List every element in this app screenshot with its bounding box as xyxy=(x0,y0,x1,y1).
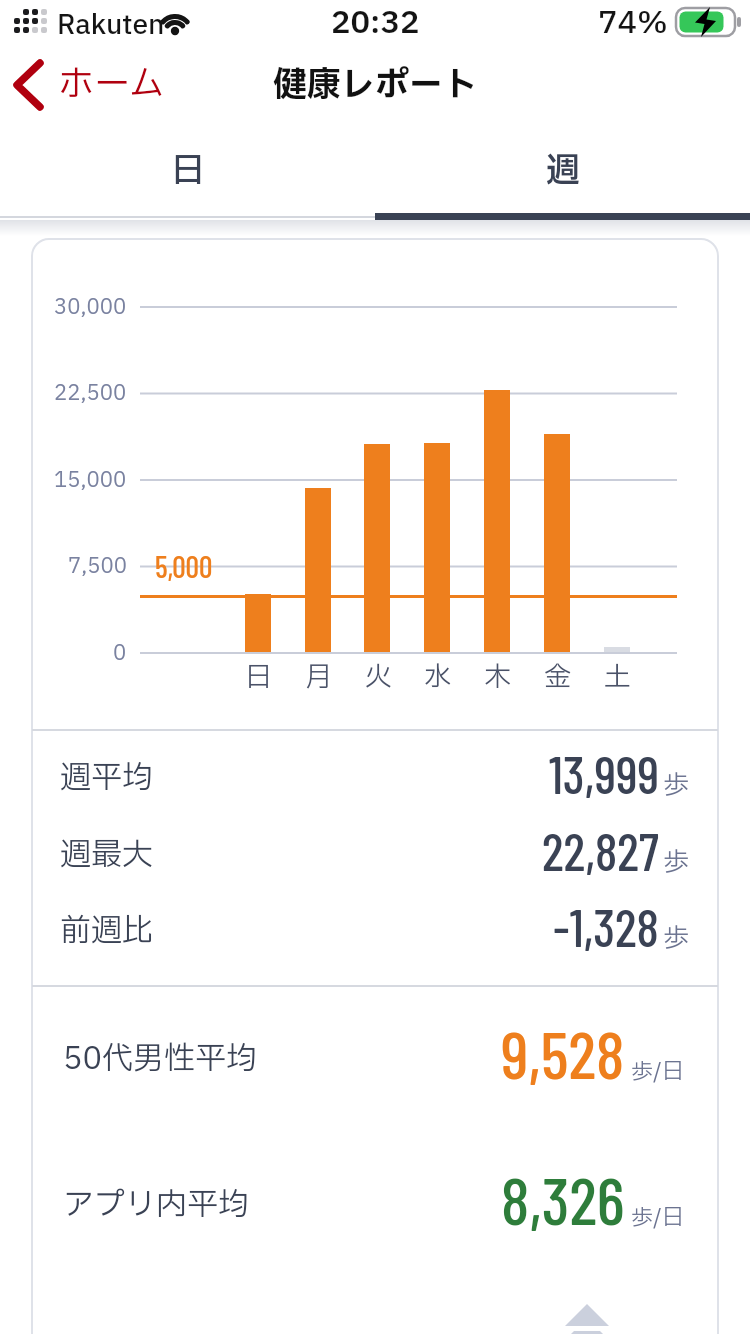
staticText: ホーム xyxy=(58,58,165,112)
staticText: 日 xyxy=(171,146,205,197)
button[interactable]: 週最大 xyxy=(60,820,690,890)
button[interactable]: 50代男性平均 xyxy=(63,1014,684,1104)
staticText: アプリ内平均 xyxy=(63,1182,249,1228)
staticText: 歩 xyxy=(663,919,690,958)
button[interactable]: 日 xyxy=(0,136,375,206)
staticText: 歩 xyxy=(663,766,690,805)
staticText: 週平均 xyxy=(60,755,153,801)
staticText: Rakuten xyxy=(57,5,165,45)
staticText: 15,000 xyxy=(54,465,127,496)
button[interactable] xyxy=(545,1295,635,1334)
staticText: 歩/日 xyxy=(631,1056,684,1089)
staticText: 74% xyxy=(598,0,668,44)
staticText: 歩 xyxy=(663,843,690,882)
staticText: 前週比 xyxy=(60,908,153,954)
staticText: 5,000 xyxy=(155,548,213,584)
button[interactable]: 週平均 xyxy=(60,743,690,813)
staticText: 月 xyxy=(305,657,332,697)
staticText: 20:32 xyxy=(331,0,420,44)
button[interactable]: ホーム xyxy=(10,58,165,112)
staticText: 13,999 xyxy=(549,742,659,804)
staticText: 火 xyxy=(365,657,392,697)
button[interactable]: アプリ内平均 xyxy=(63,1160,684,1250)
staticText: 土 xyxy=(604,657,631,697)
staticText: 週 xyxy=(546,146,580,197)
staticText: 7,500 xyxy=(68,551,127,582)
staticText: 22,827 xyxy=(542,819,659,881)
button[interactable]: 前週比 xyxy=(60,896,690,966)
staticText: 金 xyxy=(544,657,571,697)
staticText: 22,500 xyxy=(54,378,127,409)
staticText: 木 xyxy=(484,657,511,697)
staticText: 歩/日 xyxy=(631,1202,684,1235)
staticText: 週最大 xyxy=(60,832,153,878)
staticText: 30,000 xyxy=(54,292,127,323)
staticText: 健康レポート xyxy=(273,60,477,111)
staticText: 日 xyxy=(245,657,272,697)
staticText: 50代男性平均 xyxy=(63,1036,258,1082)
staticText: 水 xyxy=(424,657,451,697)
button[interactable]: 週 xyxy=(375,136,750,206)
staticText: 0 xyxy=(113,638,127,669)
staticText: 9,528 xyxy=(501,1013,625,1092)
staticText: -1,328 xyxy=(553,895,659,957)
staticText: 8,326 xyxy=(501,1159,625,1238)
